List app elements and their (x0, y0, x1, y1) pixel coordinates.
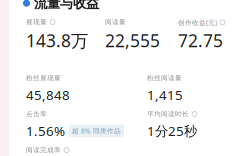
staticText: 超 8% 同类作品 (72, 126, 121, 135)
staticText: 展现量 (26, 18, 47, 26)
staticText: 143.8万 (26, 29, 88, 52)
staticText: 平均阅读时长 (147, 110, 189, 118)
staticText: 流量与收益 (34, 0, 99, 11)
staticText: 1.56% (26, 122, 65, 140)
staticText: 阅读量 (105, 18, 126, 26)
staticText: 粉丝展现量 (26, 74, 61, 82)
staticText: 45,848 (26, 86, 70, 104)
staticText: 22,555 (105, 29, 160, 52)
staticText: 72.75 (178, 29, 223, 52)
staticText: 1分25秒 (147, 122, 197, 140)
staticText: 阅读完成率 (26, 146, 61, 154)
staticText: 创作收益(元) (178, 18, 217, 27)
staticText: 粉丝阅读量 (147, 74, 182, 82)
staticText: 点击率 (26, 110, 47, 118)
staticText: 1,415 (147, 86, 183, 104)
